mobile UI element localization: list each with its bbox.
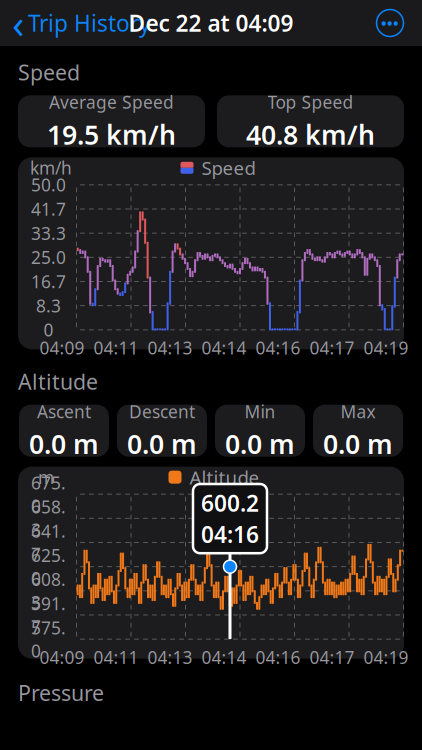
button[interactable]: Ascent: [19, 405, 109, 457]
button[interactable]: Descent: [117, 405, 207, 457]
staticText: 04:09: [39, 336, 84, 359]
button[interactable]: Min: [215, 405, 305, 457]
staticText: 19.5 km/h: [47, 117, 176, 152]
staticText: 04:14: [201, 336, 246, 359]
staticText: 04:11: [93, 336, 138, 359]
staticText: 04:19: [363, 336, 408, 359]
staticText: 658.3: [31, 495, 66, 541]
staticText: Ascent: [37, 400, 91, 423]
staticText: 0.0 m: [127, 426, 197, 461]
staticText: 04:16: [201, 519, 259, 549]
staticText: 40.8 km/h: [246, 117, 375, 152]
staticText: 04:11: [93, 646, 138, 669]
staticText: Dec 22 at 04:09: [128, 8, 293, 38]
staticText: Min: [244, 400, 275, 423]
staticText: •••: [381, 13, 399, 33]
staticText: Max: [340, 400, 375, 423]
button[interactable]: Max: [313, 405, 403, 457]
staticText: 16.7: [31, 270, 66, 293]
staticText: 04:16: [255, 336, 300, 359]
staticText: Average Speed: [49, 91, 174, 114]
staticText: 50.0: [31, 173, 66, 196]
staticText: 0: [43, 318, 53, 341]
staticText: 8.3: [36, 294, 61, 317]
button[interactable]: ‹: [0, 1, 151, 45]
button[interactable]: More options: [368, 1, 412, 45]
staticText: 0.0 m: [323, 426, 393, 461]
staticText: Descent: [129, 400, 195, 423]
staticText: 641.7: [31, 519, 66, 565]
staticText: Altitude: [189, 465, 259, 490]
button[interactable]: Top Speed: [217, 95, 404, 147]
staticText: 25.0: [31, 246, 66, 269]
staticText: Altitude: [18, 367, 98, 396]
staticText: 575.0: [31, 616, 66, 662]
button[interactable]: Average Speed: [18, 95, 205, 147]
staticText: ‹: [12, 0, 24, 49]
staticText: 600.2: [201, 488, 259, 518]
staticText: 0.0 m: [225, 426, 295, 461]
staticText: m: [38, 466, 54, 489]
staticText: 04:13: [147, 336, 192, 359]
staticText: Speed: [201, 155, 255, 180]
staticText: 625.0: [31, 544, 66, 590]
staticText: 04:17: [309, 336, 354, 359]
staticText: 0.0 m: [29, 426, 99, 461]
staticText: 41.7: [31, 197, 66, 220]
staticText: Pressure: [18, 679, 104, 707]
staticText: 04:14: [201, 646, 246, 669]
staticText: 591.7: [31, 592, 66, 638]
staticText: 675.0: [31, 471, 66, 517]
staticText: Trip History: [28, 8, 151, 38]
staticText: 33.3: [31, 222, 66, 245]
staticText: 04:13: [147, 646, 192, 669]
staticText: 04:09: [39, 646, 84, 669]
staticText: Top Speed: [267, 91, 353, 114]
staticText: 04:17: [309, 646, 354, 669]
staticText: 04:19: [363, 646, 408, 669]
staticText: 608.3: [31, 568, 66, 614]
staticText: Speed: [18, 58, 80, 86]
staticText: km/h: [30, 156, 72, 179]
staticText: 04:16: [255, 646, 300, 669]
